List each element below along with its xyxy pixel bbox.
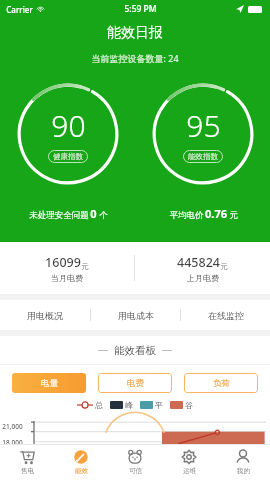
staticText: 90: [51, 105, 86, 146]
staticText: 可信: [129, 467, 142, 475]
button[interactable]: 用电概况: [0, 300, 90, 330]
staticText: 元: [227, 209, 238, 221]
staticText: 5:59 PM: [124, 3, 157, 15]
staticText: 运维: [183, 467, 196, 475]
staticText: 能效: [75, 467, 88, 475]
staticText: 健康指数: [53, 152, 83, 161]
staticText: 售电: [21, 467, 34, 475]
button[interactable]: 电费: [98, 373, 172, 393]
staticText: 21,000: [2, 422, 23, 431]
staticText: 用电成本: [118, 310, 154, 321]
staticText: 元: [81, 262, 89, 271]
staticText: Carrier: [6, 4, 33, 15]
staticText: 当前监控设备数量: 24: [0, 52, 270, 64]
staticText: 负荷: [213, 378, 230, 389]
staticText: 在线监控: [208, 310, 244, 321]
staticText: 我的: [237, 467, 250, 475]
staticText: 能效日报: [0, 24, 270, 42]
button[interactable]: 可信: [108, 444, 162, 480]
staticText: 元: [220, 262, 228, 271]
button[interactable]: 在线监控: [181, 300, 270, 330]
staticText: 上月电费: [187, 273, 219, 283]
staticText: 平均电价: [168, 209, 205, 221]
button[interactable]: 用电成本: [91, 300, 180, 330]
button[interactable]: 能效: [54, 444, 108, 480]
staticText: 能效看板: [114, 344, 156, 357]
staticText: 未处理安全问题: [28, 209, 90, 221]
staticText: 电量: [41, 378, 58, 389]
button[interactable]: 售电: [0, 444, 54, 480]
staticText: 445824: [177, 254, 220, 271]
staticText: 平: [155, 400, 163, 410]
staticText: 95: [186, 105, 221, 146]
button[interactable]: 电量: [12, 373, 86, 393]
staticText: 0.76: [205, 206, 227, 221]
staticText: 0: [90, 206, 97, 221]
staticText: 用电概况: [27, 310, 63, 321]
staticText: 峰: [125, 400, 133, 410]
staticText: 谷: [185, 400, 193, 410]
staticText: 能效指数: [188, 152, 218, 161]
staticText: 总: [95, 400, 103, 410]
staticText: 16099: [45, 254, 81, 271]
button[interactable]: 负荷: [184, 373, 258, 393]
staticText: 当月电费: [51, 273, 83, 283]
staticText: 18,000: [2, 438, 23, 444]
staticText: 个: [97, 209, 108, 221]
button[interactable]: 运维: [162, 444, 216, 480]
button[interactable]: 我的: [216, 444, 270, 480]
staticText: 电费: [127, 378, 144, 389]
